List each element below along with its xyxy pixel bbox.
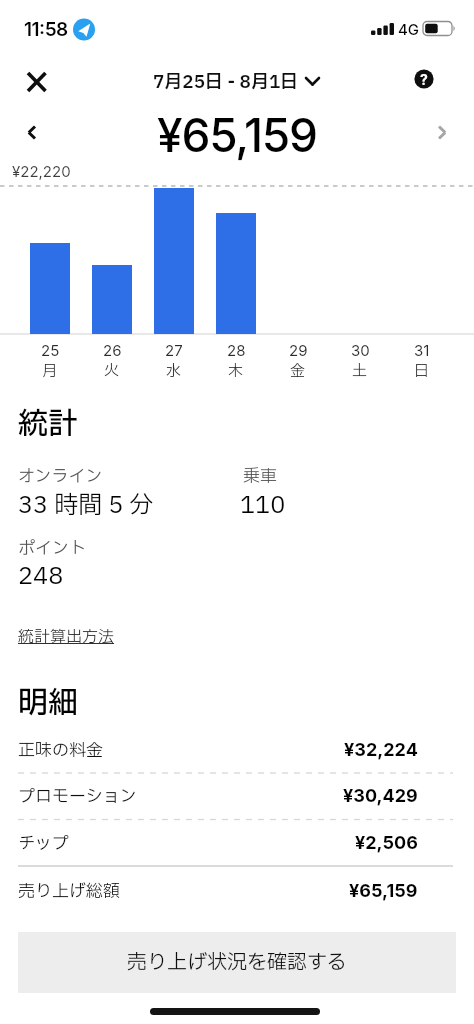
staticText: 31 (414, 341, 430, 359)
button[interactable]: 7月25日 - 8月1日 (147, 69, 327, 96)
staticText: ¥65,159 (349, 880, 418, 902)
staticText: オンライン (18, 464, 103, 489)
staticText: 4G (398, 20, 420, 38)
staticText: プロモーション (18, 784, 137, 809)
staticText: ¥30,429 (343, 785, 418, 807)
staticText: 26 (103, 341, 122, 359)
staticText: 28 (227, 341, 246, 359)
staticText: ¥22,220 (12, 162, 71, 180)
staticText: 土 (352, 360, 368, 382)
staticText: 月 (42, 360, 58, 382)
staticText: ポイント (18, 536, 86, 561)
staticText: 正味の料金 (18, 738, 103, 763)
staticText: 売り上げ総額 (18, 879, 120, 904)
staticText: 売り上げ状況を確認する (127, 948, 347, 978)
staticText: 統計 (18, 402, 78, 447)
button[interactable] (424, 115, 460, 151)
staticText: 248 (18, 559, 64, 595)
staticText: 木 (228, 360, 244, 382)
staticText: 27 (165, 341, 183, 359)
button[interactable] (18, 64, 56, 102)
button[interactable]: ? (410, 65, 438, 93)
staticText: 金 (290, 360, 306, 382)
button[interactable] (14, 115, 50, 151)
button[interactable]: 売り上げ状況を確認する (18, 932, 456, 993)
staticText: 11:58 (24, 18, 68, 41)
staticText: 7月25日 - 8月1日 (153, 69, 299, 96)
staticText: 25 (41, 341, 60, 359)
staticText: 乗車 (243, 464, 277, 489)
staticText: 水 (166, 360, 182, 382)
staticText: 29 (289, 341, 308, 359)
staticText: ? (420, 71, 428, 88)
staticText: ¥65,159 (157, 107, 317, 163)
staticText: チップ (18, 831, 69, 856)
button[interactable]: 統計算出方法 (18, 625, 115, 649)
staticText: ¥2,506 (355, 832, 418, 854)
staticText: 日 (414, 360, 430, 382)
staticText: 明細 (18, 681, 78, 726)
staticText: 30 (351, 341, 370, 359)
staticText: 110 (240, 488, 286, 524)
staticText: 火 (104, 360, 120, 382)
staticText: 33 時間 5 分 (18, 488, 154, 524)
staticText: ¥32,224 (344, 739, 418, 761)
